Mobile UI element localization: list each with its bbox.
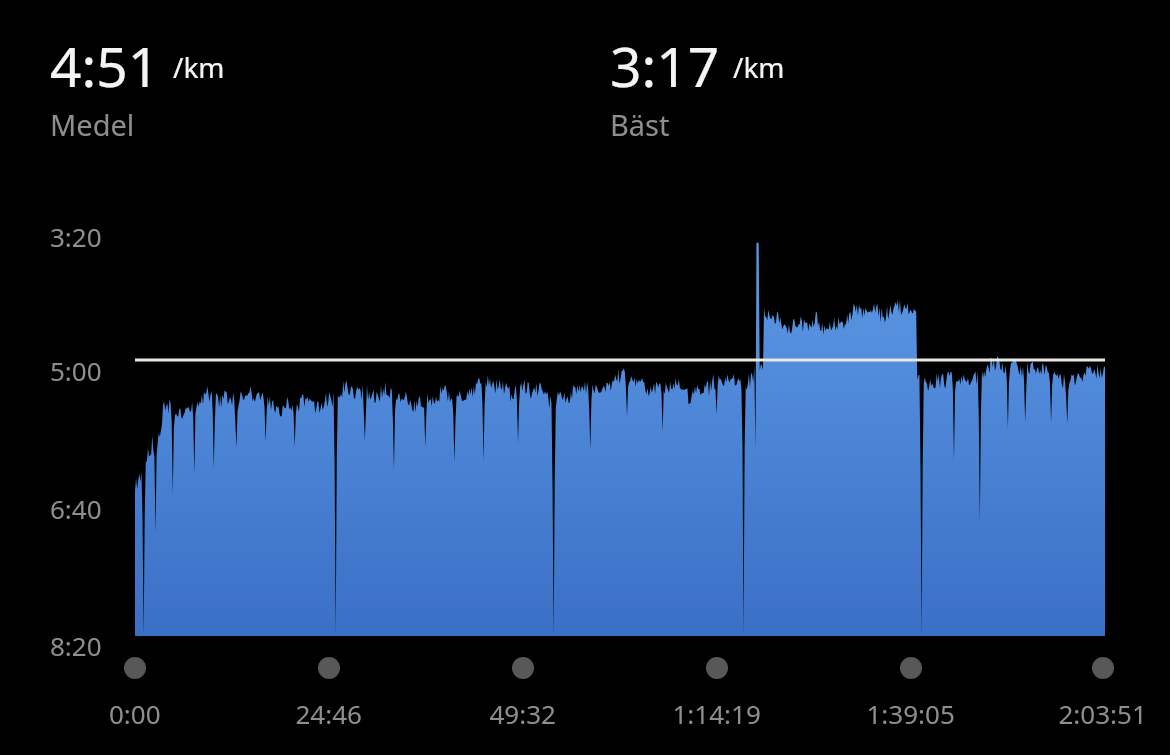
button[interactable]: Pace chart for the activity: [0, 0, 1170, 755]
